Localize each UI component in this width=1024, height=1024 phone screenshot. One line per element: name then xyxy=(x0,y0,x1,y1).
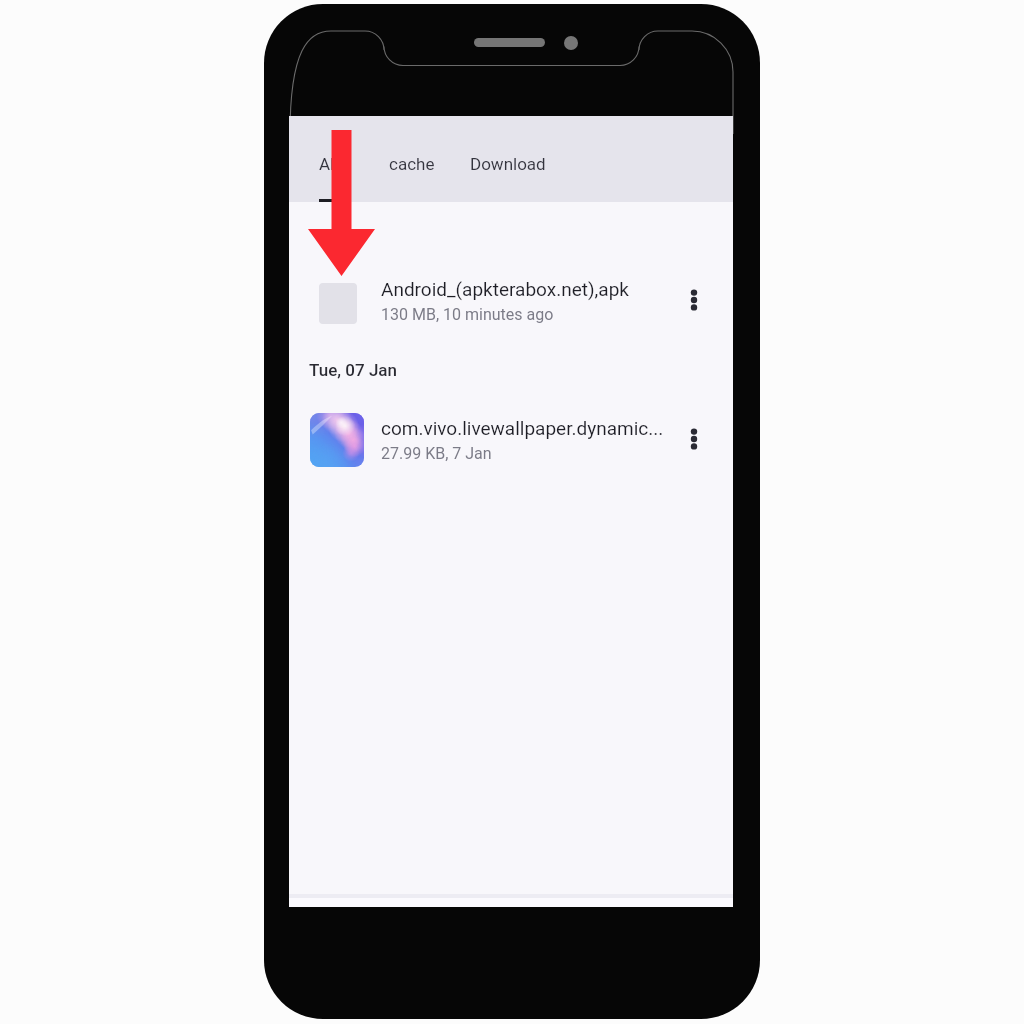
button[interactable]: cache xyxy=(375,116,448,202)
button[interactable]: com.vivo.livewallpaper.dynamic... xyxy=(289,405,733,481)
staticText: 27.99 KB, 7 Jan xyxy=(381,444,492,463)
staticText: cache xyxy=(389,154,435,174)
button[interactable]: Android_(apkterabox.net),apk xyxy=(289,266,733,342)
staticText: All xyxy=(319,154,339,174)
button[interactable]: More options xyxy=(676,421,712,457)
button[interactable]: Download xyxy=(456,116,558,202)
staticText: Android_(apkterabox.net),apk xyxy=(381,278,629,300)
staticText: com.vivo.livewallpaper.dynamic... xyxy=(381,417,664,439)
staticText: Tue, 07 Jan xyxy=(309,360,397,380)
button[interactable]: All xyxy=(305,116,352,202)
staticText: 130 MB, 10 minutes ago xyxy=(381,305,554,324)
staticText: Download xyxy=(470,154,546,174)
button[interactable]: More options xyxy=(676,282,712,318)
